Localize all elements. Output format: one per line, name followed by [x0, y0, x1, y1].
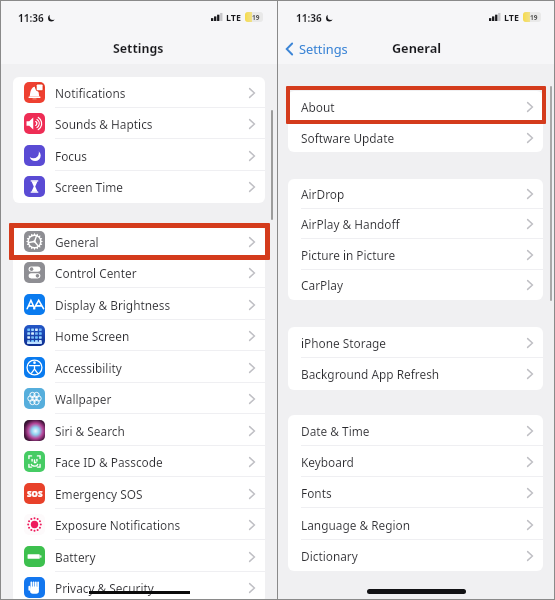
button[interactable]: Siri & Search [13, 415, 265, 446]
staticText: Display & Brightness [55, 297, 171, 313]
staticText: LTE [226, 11, 242, 23]
staticText: Keyboard [301, 454, 354, 470]
staticText: Siri & Search [55, 423, 125, 439]
staticText: LTE [504, 11, 520, 23]
staticText: Exposure Notifications [55, 517, 181, 533]
button[interactable]: Fonts [288, 477, 543, 508]
button[interactable]: Screen Time [13, 171, 265, 202]
button[interactable]: Software Update [288, 122, 543, 152]
staticText: 19 [530, 13, 538, 22]
staticText: Accessibility [55, 360, 122, 376]
button[interactable]: Accessibility [13, 352, 265, 383]
button[interactable]: About [288, 91, 543, 122]
staticText: Language & Region [301, 517, 411, 533]
staticText: Wallpaper [55, 391, 112, 407]
button[interactable]: Dictionary [288, 540, 543, 571]
staticText: General [55, 234, 99, 250]
button[interactable]: Control Center [13, 257, 265, 288]
staticText: 19 [252, 13, 260, 22]
staticText: Face ID & Passcode [55, 454, 163, 470]
button[interactable]: Back to Settings [283, 36, 351, 61]
staticText: SOS [27, 488, 43, 499]
button[interactable]: Exposure Notifications [13, 509, 265, 540]
button[interactable]: iPhone Storage [288, 327, 543, 358]
button[interactable]: Background App Refresh [288, 358, 543, 389]
button[interactable]: Date & Time [288, 415, 543, 446]
button[interactable]: General [13, 226, 265, 257]
staticText: General [392, 40, 442, 57]
button[interactable]: SOS [13, 478, 265, 509]
staticText: Settings [299, 40, 348, 57]
staticText: Fonts [301, 485, 332, 501]
staticText: CarPlay [301, 277, 343, 293]
staticText: Notifications [55, 85, 126, 101]
button[interactable]: Battery [13, 541, 265, 572]
button[interactable]: Picture in Picture [288, 240, 543, 270]
button[interactable]: Keyboard [288, 446, 543, 477]
button[interactable]: AirPlay & Handoff [288, 209, 543, 239]
staticText: AirPlay & Handoff [301, 216, 400, 232]
staticText: iPhone Storage [301, 335, 386, 351]
staticText: Control Center [55, 265, 137, 281]
button[interactable]: AirDrop [288, 179, 543, 209]
staticText: 11:36 [18, 11, 44, 25]
button[interactable]: Face ID & Passcode [13, 446, 265, 477]
staticText: Privacy & Security [55, 580, 154, 596]
staticText: About [301, 99, 335, 115]
staticText: AirDrop [301, 186, 345, 202]
staticText: Battery [55, 549, 96, 565]
button[interactable]: CarPlay [288, 270, 543, 300]
staticText: Software Update [301, 130, 395, 146]
staticText: Emergency SOS [55, 486, 143, 502]
staticText: Sounds & Haptics [55, 116, 153, 132]
button[interactable]: Notifications [13, 77, 265, 108]
staticText: 11:36 [296, 11, 322, 25]
button[interactable]: Home Screen [13, 320, 265, 351]
staticText: Focus [55, 148, 87, 164]
staticText: Settings [113, 40, 164, 57]
staticText: Date & Time [301, 423, 370, 439]
button[interactable]: Display & Brightness [13, 289, 265, 320]
staticText: Dictionary [301, 548, 358, 564]
button[interactable]: Sounds & Haptics [13, 108, 265, 139]
staticText: Screen Time [55, 179, 123, 195]
button[interactable]: Wallpaper [13, 383, 265, 414]
button[interactable]: Language & Region [288, 509, 543, 540]
button[interactable]: Privacy & Security [13, 572, 265, 600]
staticText: Picture in Picture [301, 247, 396, 263]
button[interactable]: Focus [13, 140, 265, 171]
staticText: Background App Refresh [301, 366, 440, 382]
staticText: Home Screen [55, 328, 130, 344]
